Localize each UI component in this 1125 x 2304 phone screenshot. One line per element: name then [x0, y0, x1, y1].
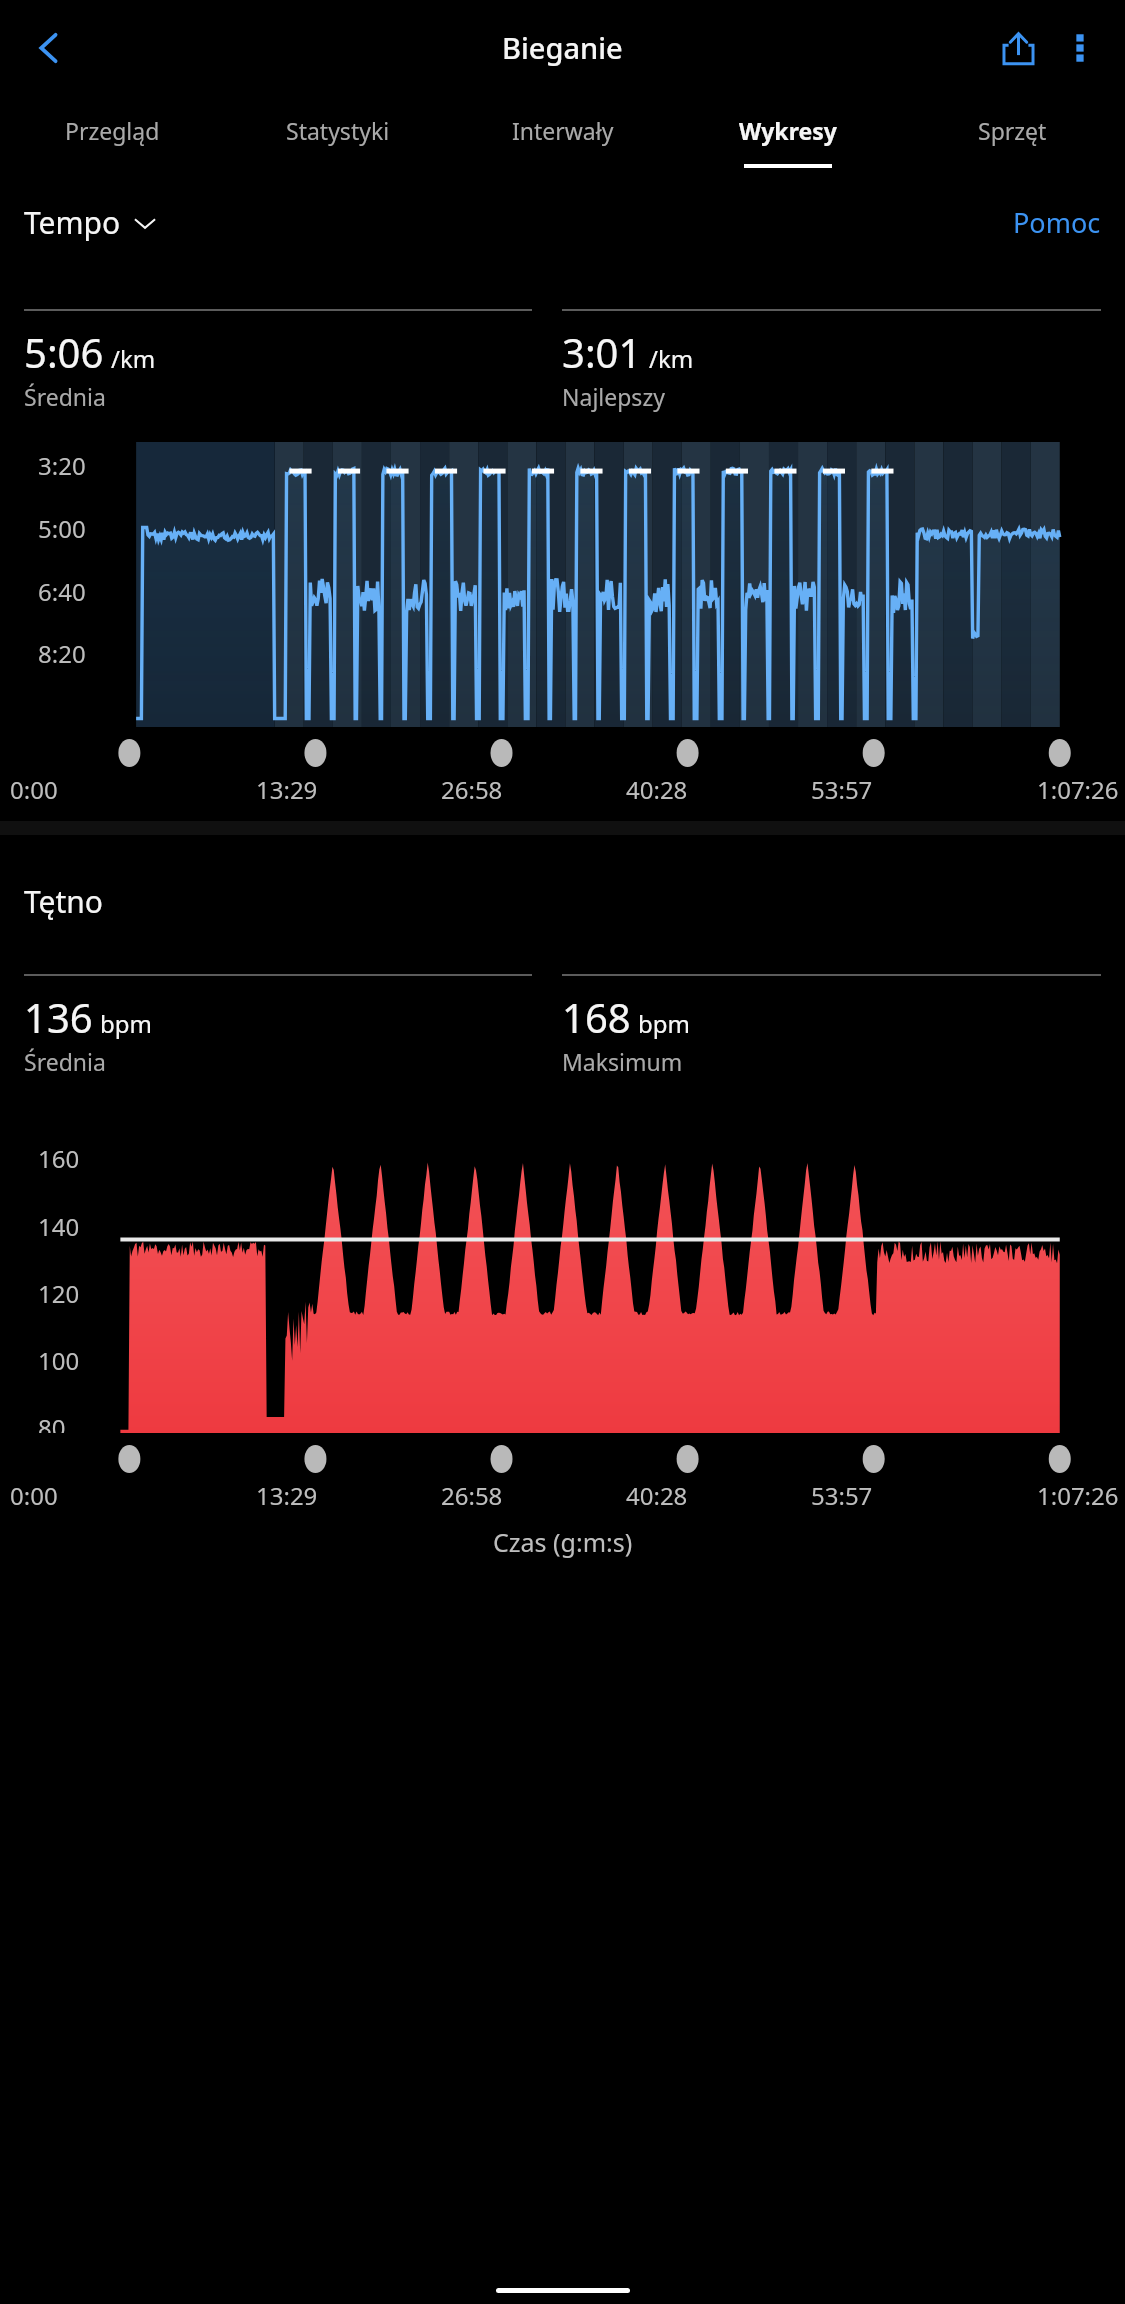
staticText: 5:00 — [38, 512, 86, 545]
staticText: Maksimum — [562, 1046, 683, 1077]
staticText: 8:20 — [38, 637, 86, 670]
staticText: 3:20 — [38, 449, 86, 482]
staticText: Najlepszy — [562, 381, 665, 412]
staticText: Bieganie — [502, 28, 623, 67]
staticText: Tempo — [24, 202, 121, 243]
button[interactable]: Tempo — [24, 202, 157, 243]
button[interactable]: Share — [987, 17, 1049, 79]
staticText: 5:06 — [24, 325, 104, 379]
staticText: 26:58 — [441, 773, 503, 806]
staticText: Tętno — [24, 881, 104, 922]
staticText: 160 — [38, 1142, 80, 1175]
staticText: 1:07:26 — [1037, 773, 1119, 806]
staticText: 40:28 — [626, 773, 688, 806]
staticText: 13:29 — [256, 1479, 318, 1512]
button[interactable]: Pomoc — [1013, 204, 1101, 241]
staticText: Statystyki — [286, 115, 390, 146]
button[interactable]: More options — [1049, 17, 1111, 79]
staticText: /km — [649, 342, 694, 375]
staticText: 120 — [38, 1277, 80, 1310]
staticText: Interwały — [512, 115, 614, 146]
staticText: 0:00 — [10, 1479, 58, 1512]
staticText: 53:57 — [811, 1479, 873, 1512]
button[interactable]: Wykresy — [675, 95, 900, 187]
staticText: 3:01 — [562, 325, 642, 379]
staticText: 140 — [38, 1210, 80, 1243]
staticText: Wykresy — [739, 115, 837, 146]
staticText: bpm — [638, 1007, 690, 1040]
staticText: Przegląd — [65, 115, 160, 146]
button[interactable]: Interwały — [450, 95, 675, 187]
button[interactable]: Przegląd — [0, 95, 225, 187]
staticText: 80 — [38, 1411, 66, 1433]
staticText: Średnia — [24, 1046, 106, 1077]
staticText: Czas (g:m:s) — [493, 1525, 633, 1559]
staticText: Średnia — [24, 381, 106, 412]
staticText: 40:28 — [626, 1479, 688, 1512]
staticText: 0:00 — [10, 773, 58, 806]
staticText: 53:57 — [811, 773, 873, 806]
staticText: 1:07:26 — [1037, 1479, 1119, 1512]
staticText: Sprzęt — [978, 115, 1047, 146]
button[interactable]: Back — [18, 17, 80, 79]
button[interactable]: Sprzęt — [900, 95, 1125, 187]
staticText: /km — [111, 342, 156, 375]
staticText: 136 — [24, 990, 93, 1044]
button[interactable]: Statystyki — [225, 95, 450, 187]
staticText: 26:58 — [441, 1479, 503, 1512]
staticText: bpm — [100, 1007, 152, 1040]
staticText: 168 — [562, 990, 631, 1044]
staticText: 13:29 — [256, 773, 318, 806]
staticText: 6:40 — [38, 575, 86, 608]
staticText: 100 — [38, 1344, 80, 1377]
